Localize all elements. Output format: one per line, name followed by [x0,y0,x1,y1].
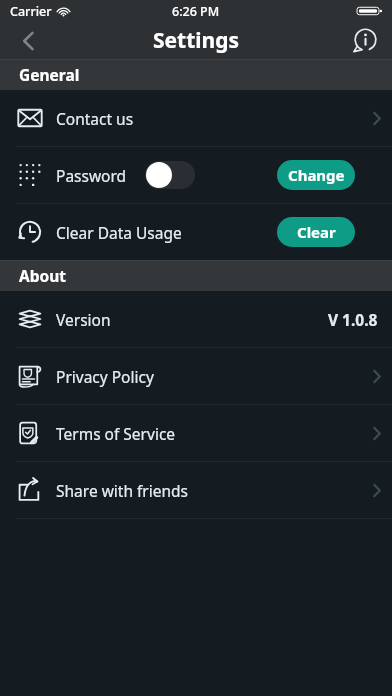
button[interactable]: Password toggle [145,161,195,189]
staticText: V 1.0.8 [328,309,378,330]
staticText: Terms of Service [56,423,176,444]
staticText: Settings [153,26,240,55]
button[interactable]: Version [0,291,392,347]
staticText: Privacy Policy [56,366,154,387]
staticText: Share with friends [56,480,189,501]
button[interactable]: Back [0,22,58,59]
staticText: Change [288,165,345,185]
button[interactable]: Contact us [0,90,392,146]
staticText: General [19,64,80,85]
button[interactable]: Clear [277,217,355,247]
staticText: Clear [297,222,336,242]
button[interactable]: Terms of Service [0,405,392,461]
button[interactable]: Clear Data Usage [0,204,392,260]
button[interactable]: Password [0,147,392,203]
staticText: About [19,265,67,286]
staticText: Contact us [56,108,134,129]
button[interactable]: Change [277,160,355,190]
staticText: Clear Data Usage [56,222,182,243]
button[interactable]: Privacy Policy [0,348,392,404]
staticText: Version [56,309,111,330]
staticText: Password [56,165,127,186]
button[interactable]: Share with friends [0,462,392,518]
staticText: 6:26 PM [172,3,220,20]
button[interactable]: Info [338,22,392,59]
staticText: Carrier [10,3,52,20]
